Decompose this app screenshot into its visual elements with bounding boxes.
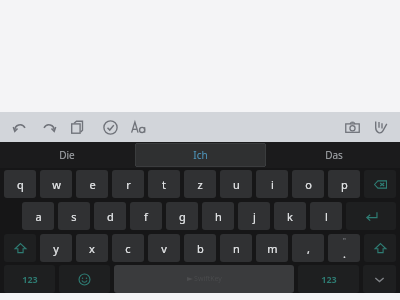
staticText: t	[162, 177, 166, 192]
button[interactable]: u	[220, 170, 252, 198]
button[interactable]: ,	[292, 234, 324, 262]
staticText: k	[287, 209, 293, 224]
button[interactable]: y	[40, 234, 72, 262]
staticText: b	[197, 241, 204, 256]
button[interactable]: Copy	[62, 113, 90, 141]
button[interactable]: Enter	[346, 202, 396, 230]
button[interactable]: i	[256, 170, 288, 198]
button[interactable]: o	[292, 170, 324, 198]
staticText: "	[343, 236, 346, 246]
button[interactable]: l	[310, 202, 342, 230]
button[interactable]: t	[148, 170, 180, 198]
button[interactable]: 123	[298, 265, 359, 293]
button[interactable]: c	[112, 234, 144, 262]
staticText: z	[197, 177, 203, 192]
button[interactable]: Undo	[6, 113, 34, 141]
button[interactable]: p	[328, 170, 360, 198]
button[interactable]: Backspace	[364, 170, 396, 198]
staticText: 123	[321, 273, 337, 285]
button[interactable]: Camera	[338, 113, 366, 141]
staticText: Die	[59, 148, 75, 162]
button[interactable]: "	[328, 234, 360, 262]
button[interactable]: Spell check	[96, 113, 124, 141]
button[interactable]: Hide keyboard	[363, 265, 396, 293]
button[interactable]: v	[148, 234, 180, 262]
button[interactable]: Ich	[135, 143, 266, 167]
button[interactable]: d	[94, 202, 126, 230]
button[interactable]: s	[58, 202, 90, 230]
staticText: l	[325, 209, 328, 224]
staticText: p	[341, 177, 348, 192]
button[interactable]: Das	[268, 143, 399, 167]
button[interactable]: m	[256, 234, 288, 262]
button[interactable]: q	[4, 170, 36, 198]
button[interactable]: r	[112, 170, 144, 198]
button[interactable]: x	[76, 234, 108, 262]
staticText: s	[71, 209, 77, 224]
button[interactable]: k	[274, 202, 306, 230]
button[interactable]: Shift	[364, 234, 396, 262]
staticText: o	[305, 177, 312, 192]
button[interactable]: Redo	[34, 113, 62, 141]
staticText: d	[107, 209, 114, 224]
button[interactable]: Die	[1, 143, 133, 167]
staticText: e	[89, 177, 96, 192]
button[interactable]: e	[76, 170, 108, 198]
button[interactable]: 123	[4, 265, 55, 293]
staticText: c	[125, 241, 131, 256]
button[interactable]: Shift	[4, 234, 36, 262]
button[interactable]: Handwriting	[366, 113, 394, 141]
staticText: x	[89, 241, 95, 256]
button[interactable]: w	[40, 170, 72, 198]
staticText: ,	[307, 241, 310, 256]
button[interactable]: z	[184, 170, 216, 198]
staticText: SwiftKey	[194, 274, 222, 284]
button[interactable]: n	[220, 234, 252, 262]
staticText: y	[53, 241, 59, 256]
staticText: n	[233, 241, 240, 256]
staticText: r	[126, 177, 131, 192]
staticText: q	[17, 177, 24, 192]
staticText: .	[343, 246, 346, 261]
button[interactable]: g	[166, 202, 198, 230]
staticText: u	[233, 177, 240, 192]
staticText: a	[35, 209, 42, 224]
button[interactable]: j	[238, 202, 270, 230]
button[interactable]: b	[184, 234, 216, 262]
button[interactable]: h	[202, 202, 234, 230]
staticText: Ich	[193, 148, 208, 162]
staticText: Das	[325, 148, 343, 162]
staticText: f	[144, 209, 148, 224]
staticText: v	[161, 241, 167, 256]
staticText: g	[179, 209, 186, 224]
staticText: w	[52, 177, 61, 192]
staticText: j	[253, 209, 256, 224]
button[interactable]: Format text	[124, 113, 152, 141]
staticText: i	[271, 177, 274, 192]
button[interactable]: Emoji	[59, 265, 110, 293]
button[interactable]: f	[130, 202, 162, 230]
staticText: h	[215, 209, 222, 224]
button[interactable]: a	[22, 202, 54, 230]
staticText: m	[267, 241, 278, 256]
staticText: 123	[22, 273, 38, 285]
